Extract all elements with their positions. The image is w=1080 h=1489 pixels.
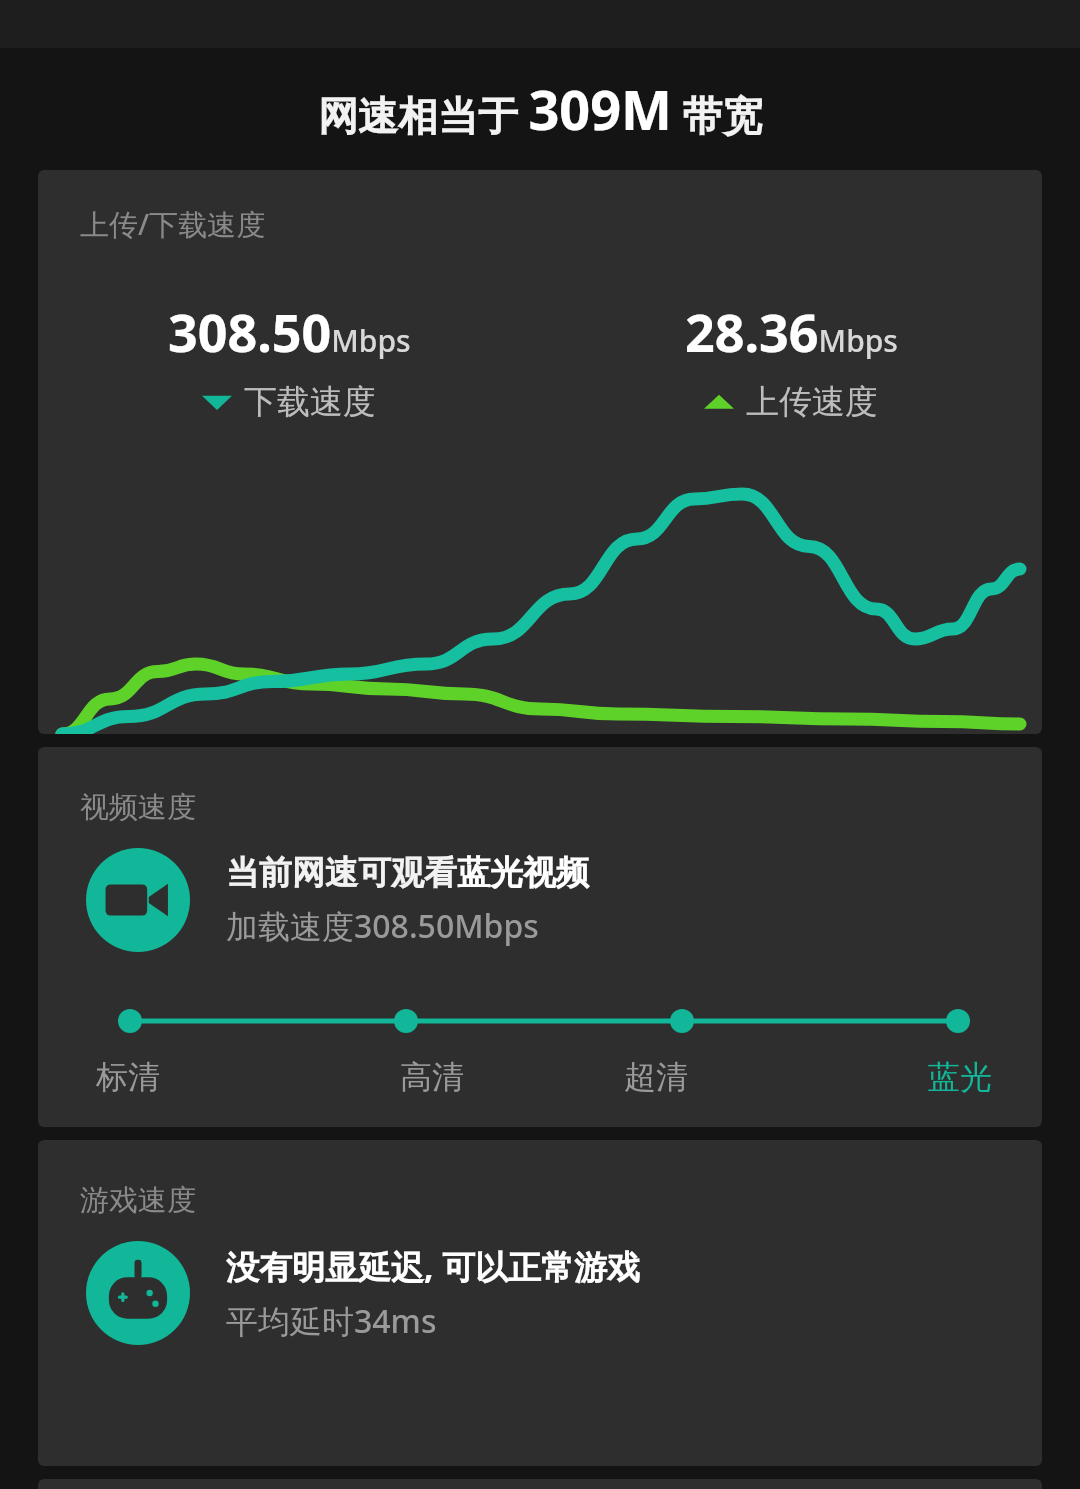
staticText: 标清 — [96, 1057, 160, 1097]
staticText: 游戏速度 — [80, 1182, 196, 1219]
staticText: 视频速度 — [80, 789, 196, 826]
staticText: 当前网速可观看蓝光视频 — [226, 852, 589, 894]
staticText: 28.36Mbps — [685, 296, 898, 367]
staticText: 超清 — [624, 1057, 688, 1097]
staticText: 高清 — [400, 1057, 464, 1097]
staticText: 加载速度308.50Mbps — [226, 904, 539, 948]
staticText: 308.50Mbps — [168, 296, 411, 367]
staticText: 下载速度 — [244, 381, 376, 423]
staticText: 上传速度 — [746, 381, 878, 423]
staticText: 没有明显延迟, 可以正常游戏 — [226, 1244, 640, 1289]
staticText: 网速相当于 309M 带宽 — [318, 72, 763, 146]
staticText: 蓝光 — [928, 1057, 992, 1097]
button[interactable]: 游戏速度 — [38, 1140, 1042, 1466]
staticText: 上传/下载速度 — [80, 204, 266, 244]
button[interactable]: 上传/下载速度 — [38, 170, 1042, 734]
button[interactable]: 视频速度 — [38, 747, 1042, 1127]
staticText: 平均延时34ms — [226, 1299, 437, 1343]
